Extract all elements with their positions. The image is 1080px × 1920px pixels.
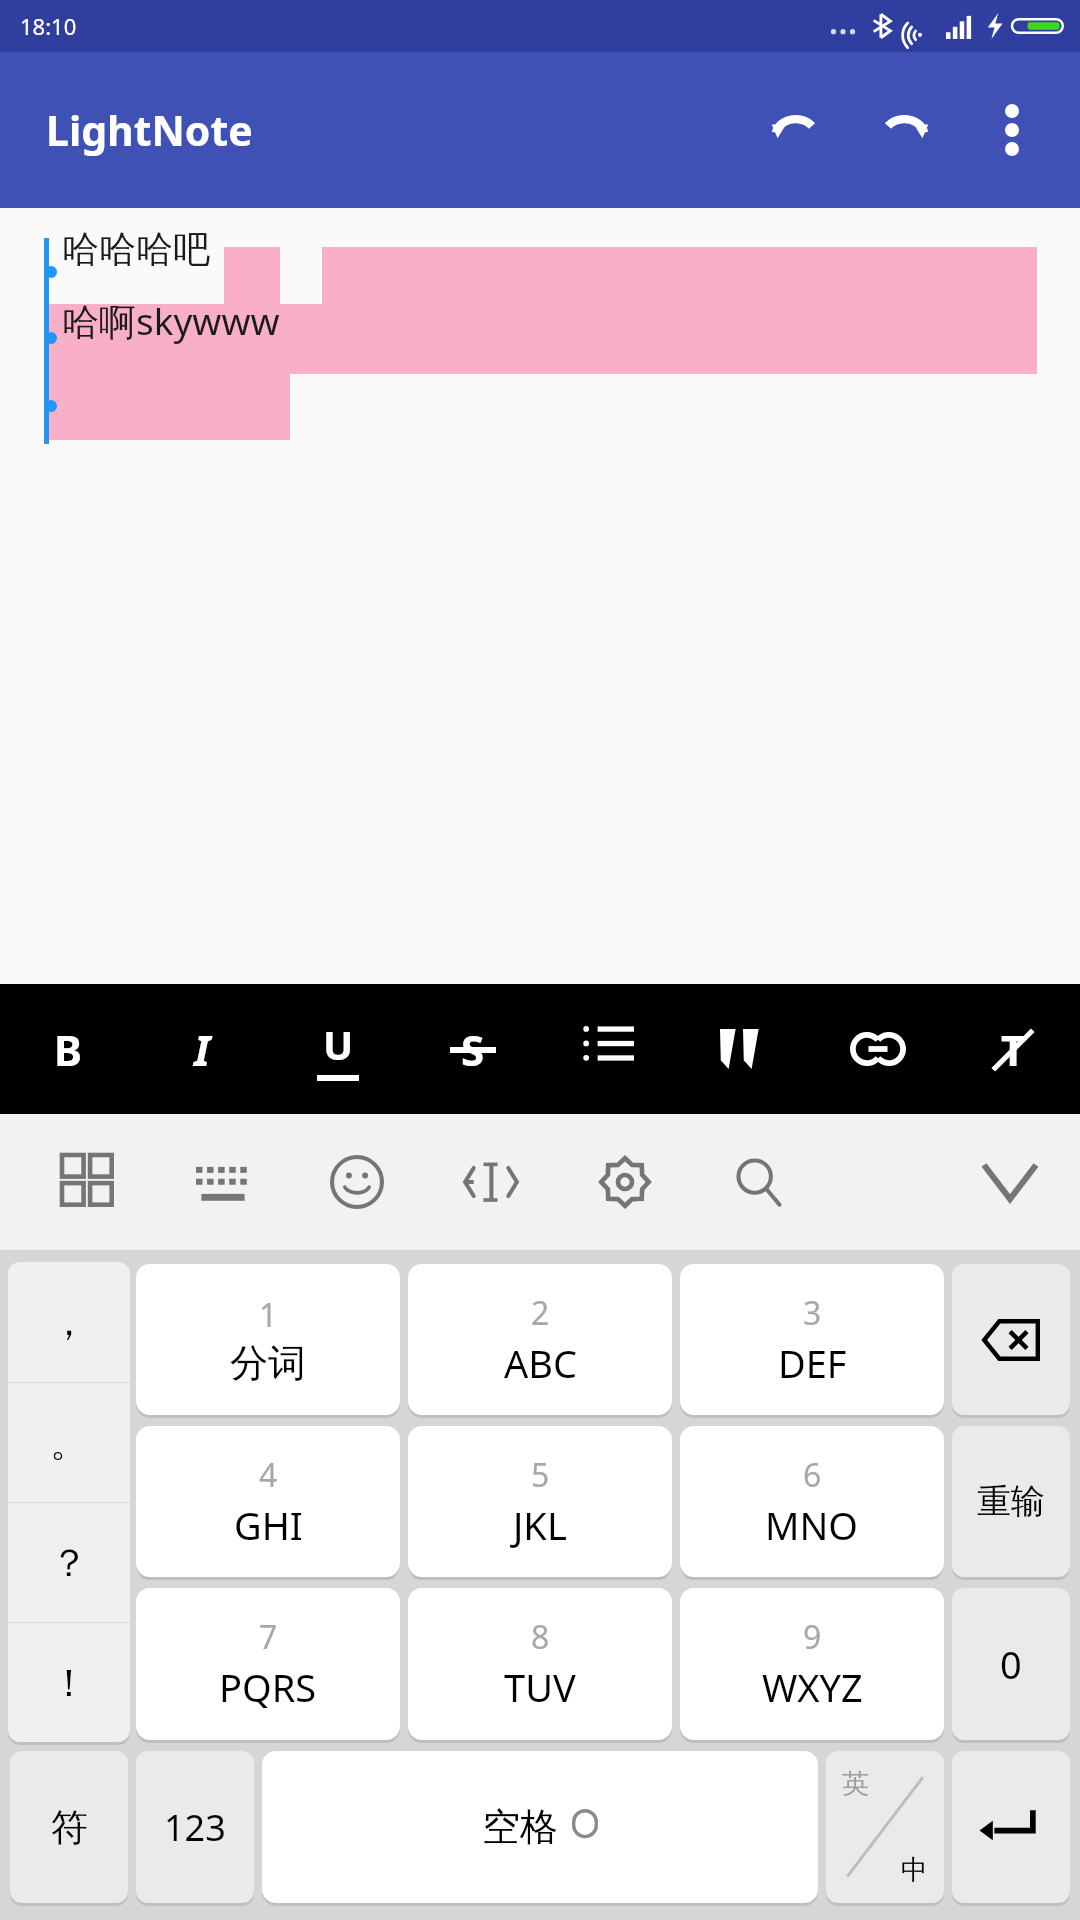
staticText: 4 [259,1453,278,1497]
staticText: 9 [803,1615,822,1659]
staticText: 1 [259,1293,278,1337]
staticText: 空格 [482,1803,558,1851]
button[interactable]: Italic [135,984,270,1114]
staticText: U [323,1017,354,1071]
button[interactable]: 空格 [262,1751,818,1903]
button[interactable]: 8 [408,1588,672,1740]
staticText: 2 [531,1291,550,1335]
button[interactable]: Search [692,1114,826,1250]
staticText: B [54,1021,82,1078]
button[interactable]: Hide keyboard [940,1114,1080,1250]
staticText: DEF [778,1337,847,1389]
staticText: PQRS [219,1661,317,1713]
staticText: 英 [842,1767,869,1801]
button[interactable]: 2 [408,1264,672,1415]
staticText: 中 [901,1853,928,1887]
staticText: 0 [1000,1638,1022,1690]
button[interactable]: ， [8,1262,130,1382]
button[interactable]: Panels [22,1114,156,1250]
button[interactable]: More options [962,80,1062,180]
button[interactable]: 4 [136,1426,400,1577]
staticText: S [461,1021,485,1078]
staticText: 6 [803,1453,822,1497]
staticText: 8 [531,1615,550,1659]
staticText: 重输 [977,1480,1045,1523]
staticText: LightNote [46,102,253,158]
staticText: 3 [803,1291,822,1335]
button[interactable]: Settings [558,1114,692,1250]
button[interactable]: 5 [408,1426,672,1577]
button[interactable]: 哈哈哈吧 [0,208,1080,984]
staticText: ABC [504,1337,577,1389]
staticText: 符 [51,1804,88,1851]
staticText: GHI [234,1499,303,1551]
button[interactable]: Bullet list [540,984,675,1114]
staticText: 5 [531,1453,550,1497]
staticText: T [1001,1021,1026,1078]
button[interactable]: 符 [10,1751,128,1903]
button[interactable]: Link [810,984,945,1114]
staticText: I [194,1021,211,1078]
button[interactable]: 重输 [952,1426,1070,1577]
button[interactable]: 0 [952,1588,1070,1740]
button[interactable]: Move cursor [424,1114,558,1250]
button[interactable]: Quote [675,984,810,1114]
button[interactable]: Undo [738,74,850,186]
staticText: 分词 [230,1339,306,1387]
button[interactable]: 。 [8,1383,130,1502]
staticText: JKL [513,1499,567,1551]
button[interactable]: 7 [136,1588,400,1740]
staticText: MNO [765,1499,859,1551]
button[interactable]: Clear formatting [945,984,1080,1114]
staticText: WXYZ [762,1661,863,1713]
button[interactable]: 英 [826,1751,944,1903]
staticText: ？ [50,1539,88,1587]
staticText: 哈哈哈吧 [62,226,210,273]
button[interactable]: 6 [680,1426,944,1577]
button[interactable]: Underline [270,984,405,1114]
button[interactable]: ？ [8,1503,130,1622]
button[interactable]: 1 [136,1264,400,1415]
button[interactable]: 123 [136,1751,254,1903]
staticText: 哈啊skywww [62,295,280,346]
button[interactable]: Enter [952,1751,1070,1903]
staticText: 。 [50,1419,88,1467]
staticText: TUV [504,1661,576,1713]
staticText: ， [50,1298,88,1346]
button[interactable]: 9 [680,1588,944,1740]
button[interactable]: Strikethrough [405,984,540,1114]
button[interactable]: Backspace [952,1264,1070,1415]
button[interactable]: Keyboard layout [156,1114,290,1250]
staticText: 7 [259,1615,278,1659]
staticText: 123 [164,1803,226,1852]
button[interactable]: Emoji [290,1114,424,1250]
button[interactable]: 3 [680,1264,944,1415]
staticText: 18:10 [20,11,77,41]
button[interactable]: ！ [8,1623,130,1742]
button[interactable]: Bold [0,984,135,1114]
button[interactable]: Redo [850,74,962,186]
staticText: ！ [50,1659,88,1707]
